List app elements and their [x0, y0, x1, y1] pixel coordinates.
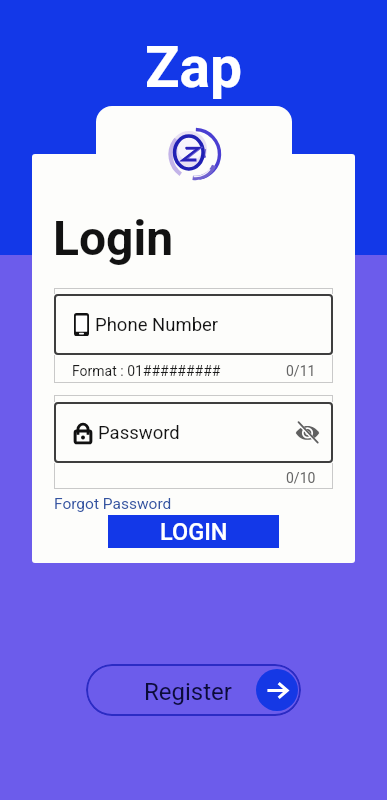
staticText: Format : 01######### — [72, 363, 221, 379]
staticText: 0/11 — [286, 363, 316, 379]
staticText: Register — [144, 678, 232, 706]
staticText: Phone Number — [95, 314, 219, 336]
staticText: Zap — [145, 34, 243, 101]
staticText: Forgot Password — [54, 495, 172, 513]
staticText: LOGIN — [160, 518, 228, 546]
button[interactable]: LOGIN — [108, 515, 279, 548]
staticText: Password — [98, 422, 180, 444]
staticText: 0/10 — [286, 470, 316, 486]
button[interactable]: Phone Number — [74, 294, 320, 355]
button[interactable]: Toggle password visibility — [295, 422, 320, 443]
button[interactable]: Register — [86, 664, 301, 716]
staticText: Login — [53, 210, 174, 266]
button[interactable]: Forgot Password — [54, 495, 172, 513]
button[interactable]: Password — [74, 402, 320, 463]
